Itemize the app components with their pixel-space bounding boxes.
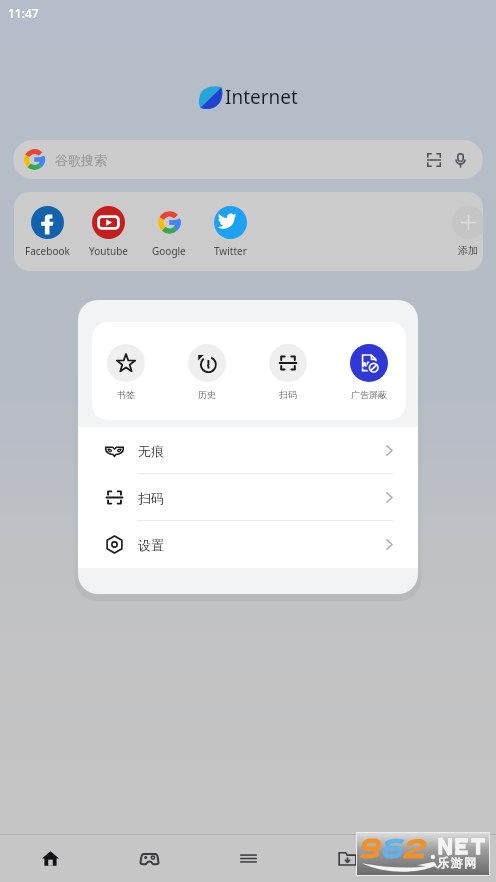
button[interactable]: 添加: [448, 206, 483, 257]
button[interactable]: 扫码: [268, 344, 308, 400]
staticText: 无痕: [138, 443, 164, 459]
staticText: 扫码: [279, 389, 297, 400]
button[interactable]: 扫码: [78, 474, 418, 521]
staticText: Google: [152, 244, 186, 258]
staticText: 扫码: [138, 490, 164, 506]
staticText: 设置: [138, 537, 164, 553]
staticText: Twitter: [214, 244, 247, 258]
button[interactable]: Home: [0, 835, 100, 882]
button[interactable]: 设置: [78, 521, 418, 568]
staticText: 乐游网: [437, 855, 478, 870]
staticText: 11:47: [8, 5, 39, 21]
staticText: 书签: [117, 389, 135, 400]
button[interactable]: Profile: [397, 835, 496, 882]
button[interactable]: Downloads: [298, 835, 397, 882]
staticText: 广告屏蔽: [351, 389, 387, 400]
button[interactable]: Games: [100, 835, 199, 882]
button[interactable]: 书签: [106, 344, 146, 400]
button[interactable]: Facebook: [17, 206, 77, 258]
staticText: Internet: [225, 84, 298, 110]
button[interactable]: Google: [139, 206, 199, 258]
button[interactable]: 无痕: [78, 427, 418, 474]
staticText: Youtube: [89, 244, 128, 258]
button[interactable]: Voice search: [447, 147, 473, 173]
staticText: 历史: [198, 389, 216, 400]
button[interactable]: Twitter: [200, 206, 260, 258]
button[interactable]: 谷歌搜索: [13, 140, 483, 179]
button[interactable]: Menu: [199, 835, 298, 882]
button[interactable]: Google Lens: [421, 147, 447, 173]
button[interactable]: 历史: [187, 344, 227, 400]
staticText: Facebook: [25, 244, 70, 258]
staticText: 添加: [458, 244, 478, 257]
staticText: 谷歌搜索: [55, 152, 107, 168]
button[interactable]: Youtube: [78, 206, 138, 258]
button[interactable]: 广告屏蔽: [349, 344, 389, 400]
